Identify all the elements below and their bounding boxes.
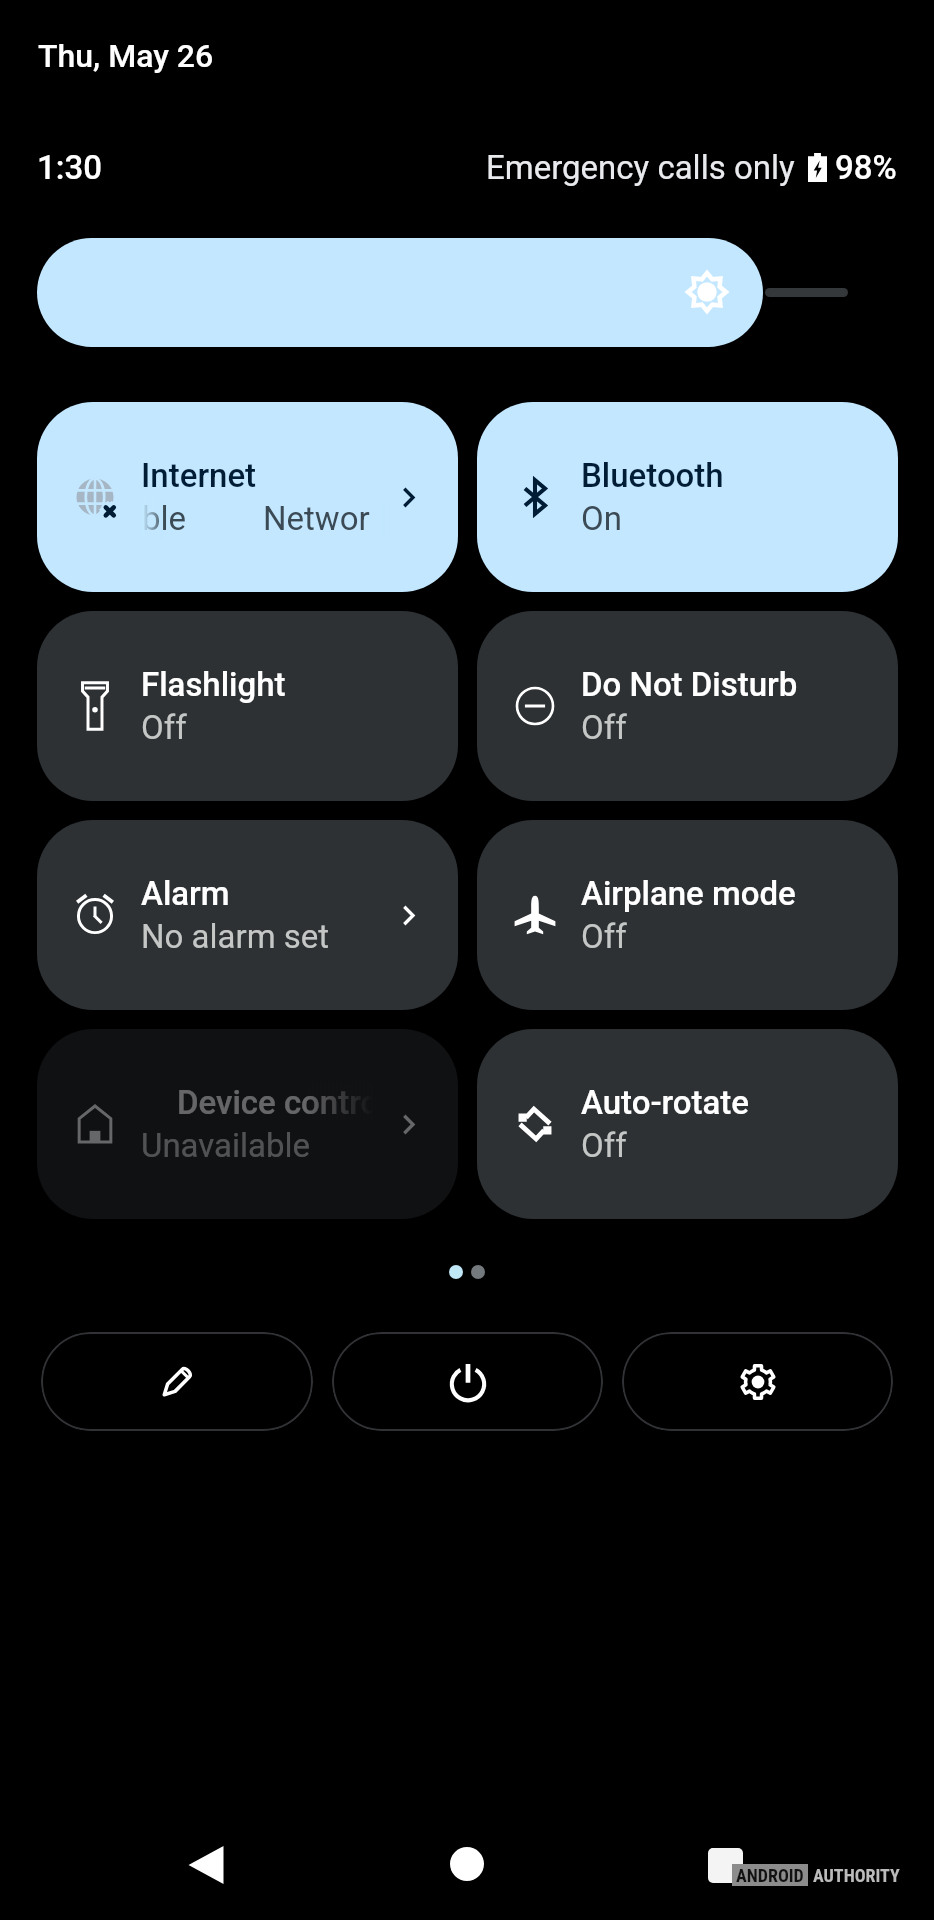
button[interactable]: Auto-rotate [477, 1029, 898, 1219]
staticText: Bluetooth [581, 456, 852, 494]
staticText: Off [581, 708, 627, 747]
staticText: Off [581, 1126, 627, 1165]
staticText: ble [142, 499, 187, 538]
button[interactable]: Alarm [37, 820, 458, 1010]
staticText: Flashlight [141, 665, 412, 703]
button[interactable]: Do Not Disturb [477, 611, 898, 801]
button[interactable]: Edit [41, 1332, 313, 1431]
button[interactable]: Internet [37, 402, 458, 592]
staticText: Networ [263, 499, 370, 538]
button[interactable]: Recents [703, 1842, 747, 1886]
button[interactable]: Bluetooth [477, 402, 898, 592]
staticText: Alarm [141, 874, 412, 912]
staticText: Thu, May 26 [38, 37, 214, 75]
staticText: Internet [141, 456, 412, 494]
staticText: Unavailable [141, 1126, 311, 1165]
button[interactable]: Flashlight [37, 611, 458, 801]
staticText: ANDROID [736, 1865, 804, 1886]
button[interactable]: Brightness [37, 238, 848, 347]
button[interactable]: Home [445, 1842, 489, 1886]
staticText: Off [141, 708, 187, 747]
staticText: No alarm set [141, 917, 330, 956]
staticText: AUTHORITY [813, 1865, 900, 1886]
staticText: 1:30 [37, 148, 102, 187]
button[interactable]: Power [332, 1332, 603, 1431]
staticText: Off [581, 917, 627, 956]
staticText: Device controls [177, 1083, 373, 1121]
button[interactable]: Device controls [37, 1029, 458, 1219]
staticText: Emergency calls only [486, 148, 795, 187]
staticText: Airplane mode [581, 874, 852, 912]
button[interactable]: Airplane mode [477, 820, 898, 1010]
button[interactable]: Settings [622, 1332, 893, 1431]
staticText: Auto-rotate [581, 1083, 852, 1121]
staticText: 98% [835, 148, 897, 187]
staticText: On [581, 499, 622, 538]
button[interactable]: Back [183, 1842, 229, 1888]
staticText: Do Not Disturb [581, 665, 852, 703]
